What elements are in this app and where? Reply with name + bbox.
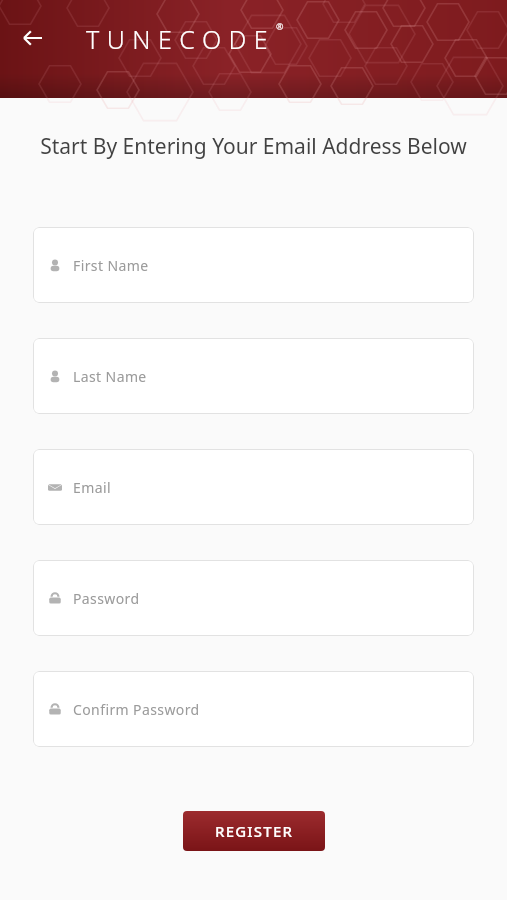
button[interactable]: First Name [33, 227, 474, 303]
button[interactable]: Back [13, 18, 53, 58]
button[interactable]: Last Name [33, 338, 474, 414]
staticText: Last Name [73, 367, 147, 386]
staticText: First Name [73, 256, 149, 275]
button[interactable]: Password [33, 560, 474, 636]
staticText: Password [73, 589, 140, 608]
staticText: ® [276, 20, 284, 32]
staticText: TUNECODE [86, 22, 276, 56]
button[interactable]: Confirm Password [33, 671, 474, 747]
staticText: REGISTER [215, 821, 294, 841]
staticText: Start By Entering Your Email Address Bel… [33, 132, 474, 161]
button[interactable]: Email [33, 449, 474, 525]
staticText: Confirm Password [73, 700, 200, 719]
button[interactable]: REGISTER [183, 811, 325, 851]
staticText: Email [73, 478, 111, 497]
